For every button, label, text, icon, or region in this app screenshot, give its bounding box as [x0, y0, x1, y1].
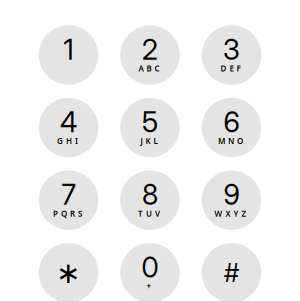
staticText: 1 — [63, 33, 73, 66]
staticText: 7 — [61, 178, 75, 212]
staticText: # — [224, 257, 239, 288]
staticText: WXYZ — [214, 208, 251, 219]
button[interactable]: 3 DEF — [202, 25, 261, 85]
button[interactable]: 0 + — [120, 243, 180, 301]
staticText: DEF — [220, 63, 245, 74]
staticText: 6 — [223, 105, 239, 139]
button[interactable]: 7 PQRS — [39, 170, 98, 230]
staticText: 9 — [223, 178, 239, 212]
button[interactable]: 1 — [39, 25, 98, 85]
button[interactable]: 2 ABC — [120, 25, 180, 85]
staticText: MNO — [218, 136, 248, 146]
button[interactable]: 8 TUV — [120, 170, 180, 230]
button[interactable]: 6 MNO — [202, 98, 261, 157]
staticText: 8 — [142, 178, 158, 212]
button[interactable]: 5 JKL — [120, 98, 180, 157]
staticText: 5 — [142, 105, 158, 139]
button[interactable]: star — [39, 243, 98, 301]
staticText: TUV — [138, 208, 165, 219]
staticText: PQRS — [53, 208, 87, 219]
staticText: GHI — [57, 136, 83, 146]
button[interactable]: 9 WXYZ — [202, 170, 261, 230]
staticText: 3 — [223, 33, 240, 66]
staticText: ABC — [138, 63, 164, 74]
staticText: JKL — [140, 136, 162, 146]
button[interactable]: 4 GHI — [39, 98, 98, 157]
button[interactable]: pound — [202, 243, 261, 301]
staticText: + — [146, 281, 156, 291]
staticText: 2 — [142, 33, 158, 66]
staticText: 0 — [141, 250, 158, 284]
staticText: ∗ — [56, 256, 81, 290]
staticText: 4 — [60, 105, 77, 139]
